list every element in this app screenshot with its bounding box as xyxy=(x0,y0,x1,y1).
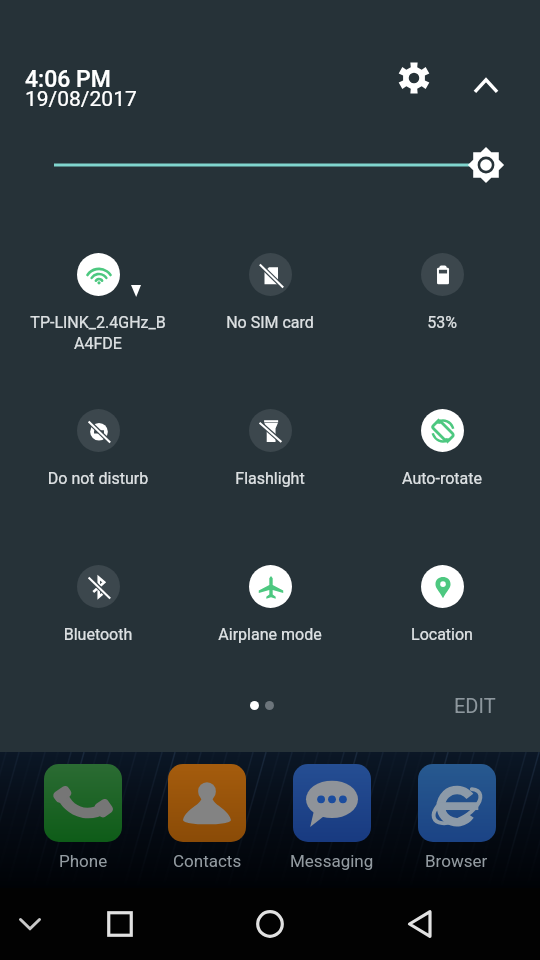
button[interactable]: Location xyxy=(356,555,528,675)
staticText: Auto-rotate xyxy=(356,469,528,488)
staticText: Phone xyxy=(59,851,108,871)
staticText: Location xyxy=(356,625,528,644)
staticText: Contacts xyxy=(173,851,242,871)
staticText: 4:06 PM xyxy=(25,66,111,93)
button[interactable]: Recents xyxy=(96,900,144,948)
staticText: No SIM card xyxy=(184,313,356,332)
staticText: Do not disturb xyxy=(12,469,184,488)
button[interactable]: TP-LINK_2.4GHz_B A4FDE xyxy=(12,243,184,363)
button[interactable]: Phone xyxy=(21,764,145,871)
staticText: Bluetooth xyxy=(12,625,184,644)
button[interactable]: Home xyxy=(246,900,294,948)
button[interactable]: Brightness xyxy=(0,133,540,197)
button[interactable]: Do not disturb xyxy=(12,399,184,519)
button[interactable]: Settings xyxy=(390,54,438,102)
button[interactable]: Browser xyxy=(394,764,519,871)
button[interactable]: Flashlight xyxy=(184,399,356,519)
staticText: Browser xyxy=(425,851,488,871)
button[interactable]: Bluetooth xyxy=(12,555,184,675)
button[interactable]: No SIM card xyxy=(184,243,356,363)
staticText: TP-LINK_2.4GHz_B A4FDE xyxy=(12,313,184,353)
button[interactable]: Airplane mode xyxy=(184,555,356,675)
button[interactable]: Hide xyxy=(6,900,54,948)
staticText: Airplane mode xyxy=(184,625,356,644)
staticText: 19/08/2017 xyxy=(25,87,137,112)
staticText: EDIT xyxy=(454,694,496,716)
button[interactable]: 53% xyxy=(356,243,528,363)
staticText: 53% xyxy=(356,313,528,332)
button[interactable]: Auto-rotate xyxy=(356,399,528,519)
button[interactable]: Messaging xyxy=(269,764,394,871)
button[interactable]: EDIT xyxy=(444,690,506,720)
button[interactable]: Contacts xyxy=(145,764,269,871)
staticText: Flashlight xyxy=(184,469,356,488)
button[interactable]: 4:06 PM xyxy=(25,66,165,114)
button[interactable]: Collapse xyxy=(462,54,510,102)
button[interactable]: Back xyxy=(396,900,444,948)
staticText: Messaging xyxy=(290,851,374,871)
